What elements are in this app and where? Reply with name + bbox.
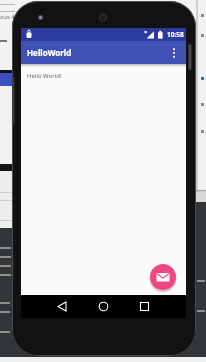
button[interactable] <box>150 264 176 290</box>
button[interactable] <box>167 46 181 60</box>
staticText: 10:58 <box>167 30 184 39</box>
button[interactable] <box>52 295 72 318</box>
button[interactable] <box>134 295 154 318</box>
staticText: xus 4 <box>0 13 15 21</box>
staticText: HelloWorld <box>27 47 72 58</box>
button[interactable] <box>93 295 113 318</box>
staticText: Hello World! <box>27 72 62 80</box>
